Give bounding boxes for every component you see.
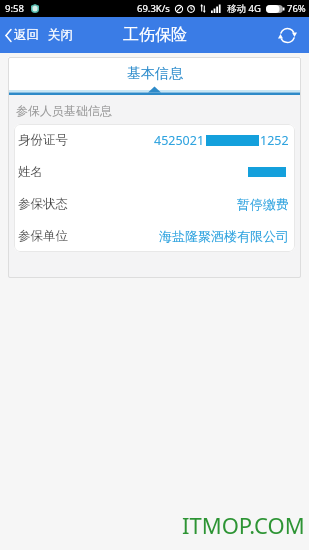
staticText: 海盐隆聚酒楼有限公司 (159, 228, 289, 244)
staticText: 暂停缴费 (237, 196, 289, 212)
staticText: ITMOP.COM (182, 510, 305, 540)
button[interactable]: 参保单位 (14, 220, 295, 252)
staticText: 参保人员基础信息 (16, 103, 112, 118)
staticText: 1252 (260, 132, 289, 149)
staticText: 76% (287, 2, 306, 15)
button[interactable]: 身份证号 (14, 124, 295, 156)
staticText: 工伤保险 (123, 25, 187, 45)
button[interactable]: 参保状态 (14, 188, 295, 220)
staticText: 身份证号 (18, 132, 68, 148)
staticText: 4525021 (154, 132, 205, 149)
staticText: 69.3K/s (137, 2, 170, 15)
button[interactable]: 姓名 (14, 156, 295, 188)
staticText: 基本信息 (127, 65, 183, 83)
staticText: 移动 4G (227, 2, 261, 15)
staticText: 返回 (14, 27, 39, 43)
staticText: 参保单位 (18, 228, 68, 244)
button[interactable]: 关闭 (48, 27, 73, 43)
staticText: 姓名 (18, 164, 43, 180)
button[interactable] (279, 27, 296, 44)
staticText: 9:58 (5, 2, 24, 15)
staticText: 参保状态 (18, 196, 68, 212)
button[interactable]: 返回 (5, 27, 39, 43)
staticText: 关闭 (48, 27, 73, 43)
button[interactable]: 基本信息 (8, 57, 301, 95)
